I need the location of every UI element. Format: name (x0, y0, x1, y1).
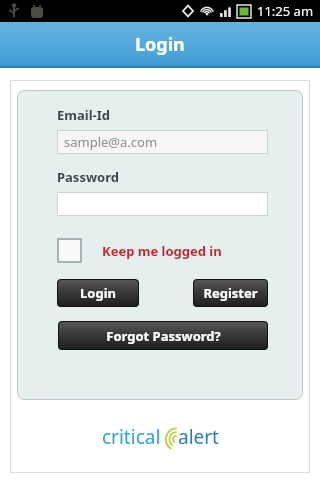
staticText: Login (80, 284, 116, 302)
button[interactable]: Login (57, 279, 139, 307)
staticText: alert (178, 424, 219, 450)
staticText: sample@a.com (64, 133, 158, 151)
staticText: Email-Id (57, 106, 110, 124)
staticText: Forgot Password? (106, 327, 221, 345)
button[interactable]: Keep me logged in checkbox (57, 238, 82, 263)
button[interactable]: Forgot Password? (58, 321, 268, 350)
button[interactable]: Keep me logged in (102, 242, 222, 260)
staticText: Register (203, 284, 258, 302)
staticText: critical (102, 424, 161, 450)
staticText: Login (135, 32, 185, 57)
button[interactable]: Register (193, 279, 268, 307)
staticText: Password (57, 168, 119, 186)
button[interactable] (57, 192, 268, 216)
button[interactable]: sample@a.com (57, 130, 268, 154)
staticText: 11:25 am (257, 2, 314, 20)
